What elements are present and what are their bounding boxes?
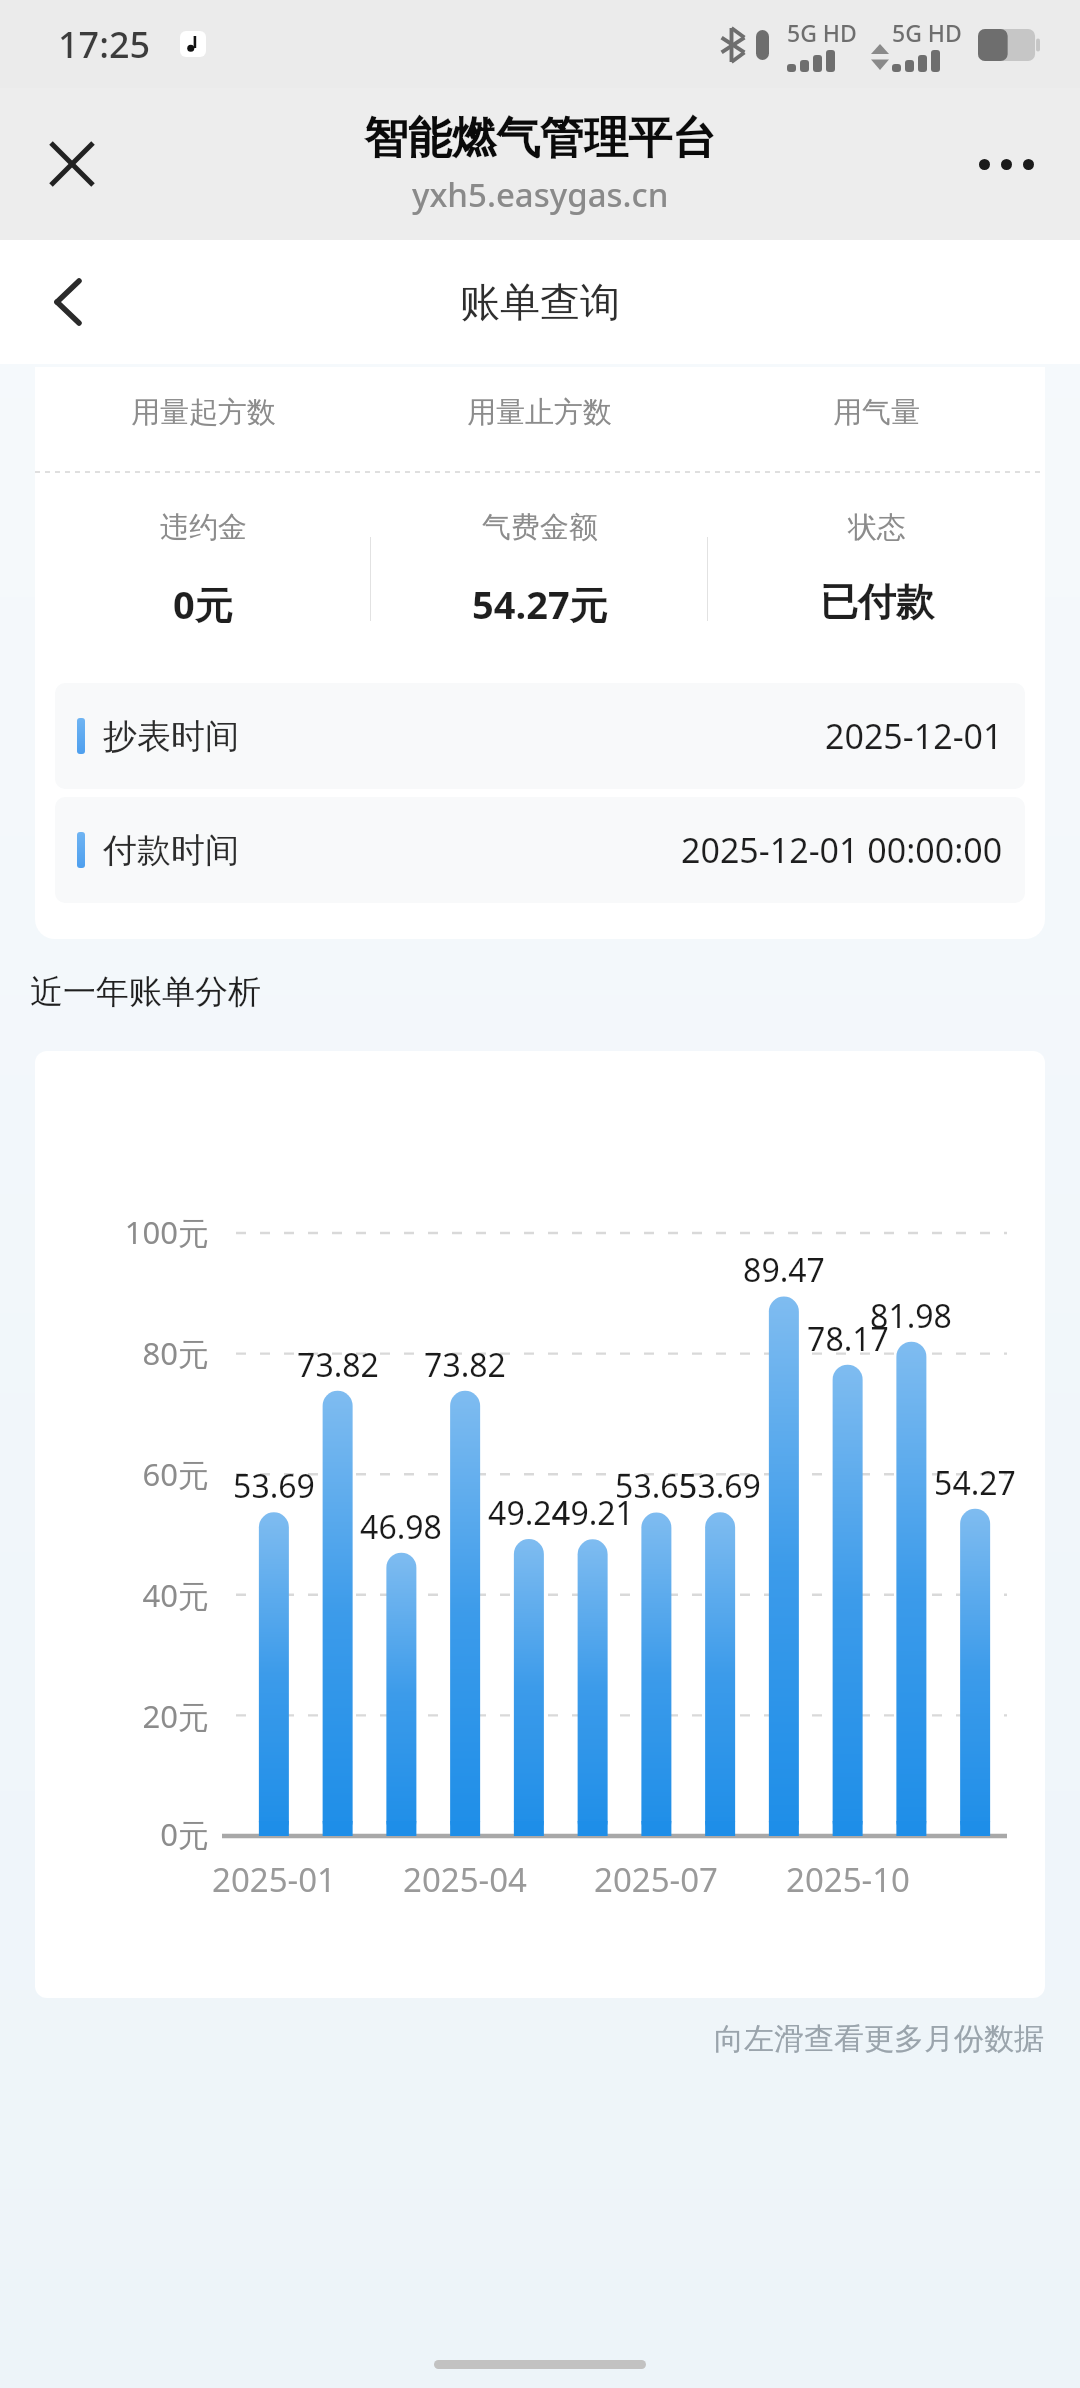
staticText: 80元 [77, 1332, 209, 1374]
staticText: 账单查询 [460, 277, 620, 327]
staticText: 60元 [77, 1453, 209, 1495]
staticText: 近一年账单分析 [30, 971, 261, 1013]
staticText: 46.98 [343, 1505, 459, 1549]
staticText: 89.47 [726, 1248, 842, 1292]
staticText: 73.82 [407, 1343, 523, 1387]
staticText: 5G HD [787, 17, 857, 48]
staticText: 用量起方数 [131, 394, 276, 431]
staticText: 违约金 [160, 509, 247, 546]
button[interactable]: 关闭 [34, 126, 110, 202]
staticText: 53.65 [598, 1464, 714, 1508]
staticText: 73.82 [280, 1343, 396, 1387]
staticText: 81.98 [853, 1294, 969, 1338]
staticText: 付款时间 [103, 829, 239, 872]
button[interactable]: 抄表时间 [55, 683, 1025, 789]
staticText: 2025-01 [184, 1857, 364, 1902]
staticText: 54.27元 [472, 578, 608, 630]
staticText: 状态 [848, 509, 906, 546]
staticText: 49.24 [471, 1491, 587, 1535]
staticText: 用气量 [833, 394, 920, 431]
staticText: 2025-10 [758, 1857, 938, 1902]
staticText: 0元 [77, 1813, 209, 1855]
staticText: 已付款 [820, 578, 934, 626]
staticText: yxh5.easygas.cn [412, 172, 669, 217]
staticText: 53.69 [662, 1464, 778, 1508]
staticText: 2025-04 [375, 1857, 555, 1902]
staticText: 2025-07 [566, 1857, 746, 1902]
staticText: 智能燃气管理平台 [364, 111, 716, 166]
staticText: 0元 [173, 578, 233, 630]
staticText: 5G HD [892, 17, 962, 48]
staticText: 2025-12-01 [825, 713, 1003, 759]
staticText: 49.21 [535, 1491, 651, 1535]
staticText: 用量止方数 [467, 394, 612, 431]
staticText: 气费金额 [482, 509, 598, 546]
staticText: 53.69 [216, 1464, 332, 1508]
staticText: 20元 [77, 1695, 209, 1737]
staticText: 40元 [77, 1574, 209, 1616]
staticText: 78.17 [790, 1317, 906, 1361]
staticText: 17:25 [58, 20, 151, 69]
staticText: 抄表时间 [103, 715, 239, 758]
staticText: 2025-12-01 00:00:00 [681, 827, 1003, 873]
staticText: 向左滑查看更多月份数据 [0, 2020, 1044, 2058]
button[interactable]: 付款时间 [55, 797, 1025, 903]
staticText: 100元 [77, 1211, 209, 1253]
button[interactable]: 更多 [966, 129, 1046, 199]
staticText: 54.27 [917, 1461, 1033, 1505]
button[interactable]: 返回 [28, 263, 106, 341]
